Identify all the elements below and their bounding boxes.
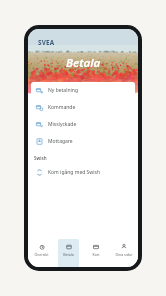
button[interactable]: Kommande	[31, 99, 135, 116]
staticText: Dina sidor	[115, 252, 133, 257]
staticText: Mottagare	[48, 138, 73, 145]
staticText: Misslyckade	[48, 121, 77, 128]
button[interactable]: Mottagare	[31, 133, 135, 150]
button[interactable]: Översikt	[28, 239, 55, 267]
button[interactable]: Betala	[55, 239, 82, 267]
staticText: Betala	[66, 55, 101, 71]
button[interactable]: Misslyckade	[31, 116, 135, 133]
button[interactable]: Dina sidor	[110, 239, 138, 267]
staticText: Översikt	[34, 252, 49, 257]
button[interactable]: Kort	[82, 239, 110, 267]
button[interactable]: Ny betalning	[31, 82, 135, 99]
staticText: Kort	[92, 252, 100, 257]
staticText: Kommande	[48, 104, 76, 111]
staticText: Kom igång med Swish	[48, 169, 101, 176]
button[interactable]: Kom igång med Swish	[31, 164, 135, 181]
staticText: Ny betalning	[48, 87, 78, 94]
staticText: SVEA	[38, 38, 55, 47]
staticText: Swish	[34, 155, 47, 161]
staticText: Betala	[63, 252, 74, 257]
